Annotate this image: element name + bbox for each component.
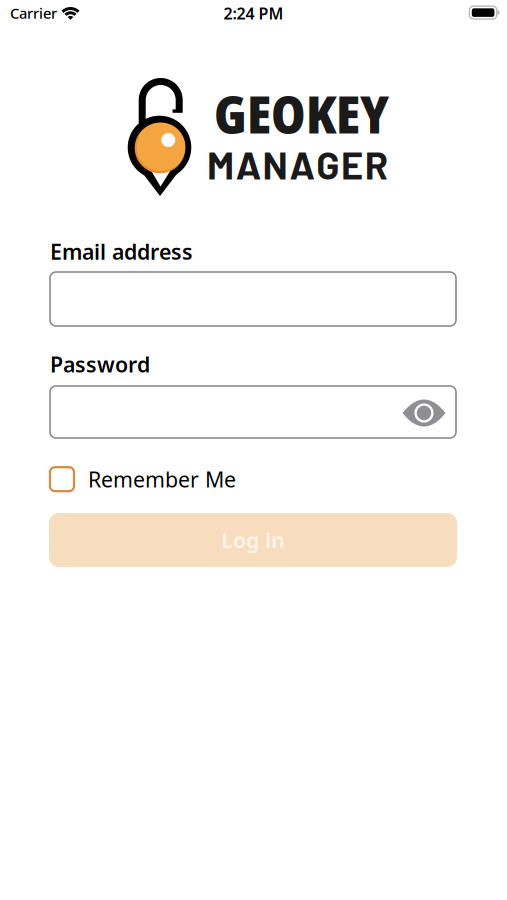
button[interactable]: Email address xyxy=(50,272,456,326)
button[interactable]: Password xyxy=(50,386,456,438)
staticText: Email address xyxy=(50,237,193,266)
staticText: MANAGER xyxy=(207,141,388,187)
staticText: Password xyxy=(50,350,150,378)
staticText: Carrier xyxy=(10,3,57,23)
staticText: 2:24 PM xyxy=(223,3,283,24)
button[interactable]: Remember Me xyxy=(50,465,236,493)
staticText: GEOKEY xyxy=(214,78,389,148)
staticText: Log in xyxy=(221,526,285,554)
button[interactable]: Log in xyxy=(49,513,457,567)
button[interactable]: Show password xyxy=(401,396,447,430)
staticText: Remember Me xyxy=(88,465,236,493)
